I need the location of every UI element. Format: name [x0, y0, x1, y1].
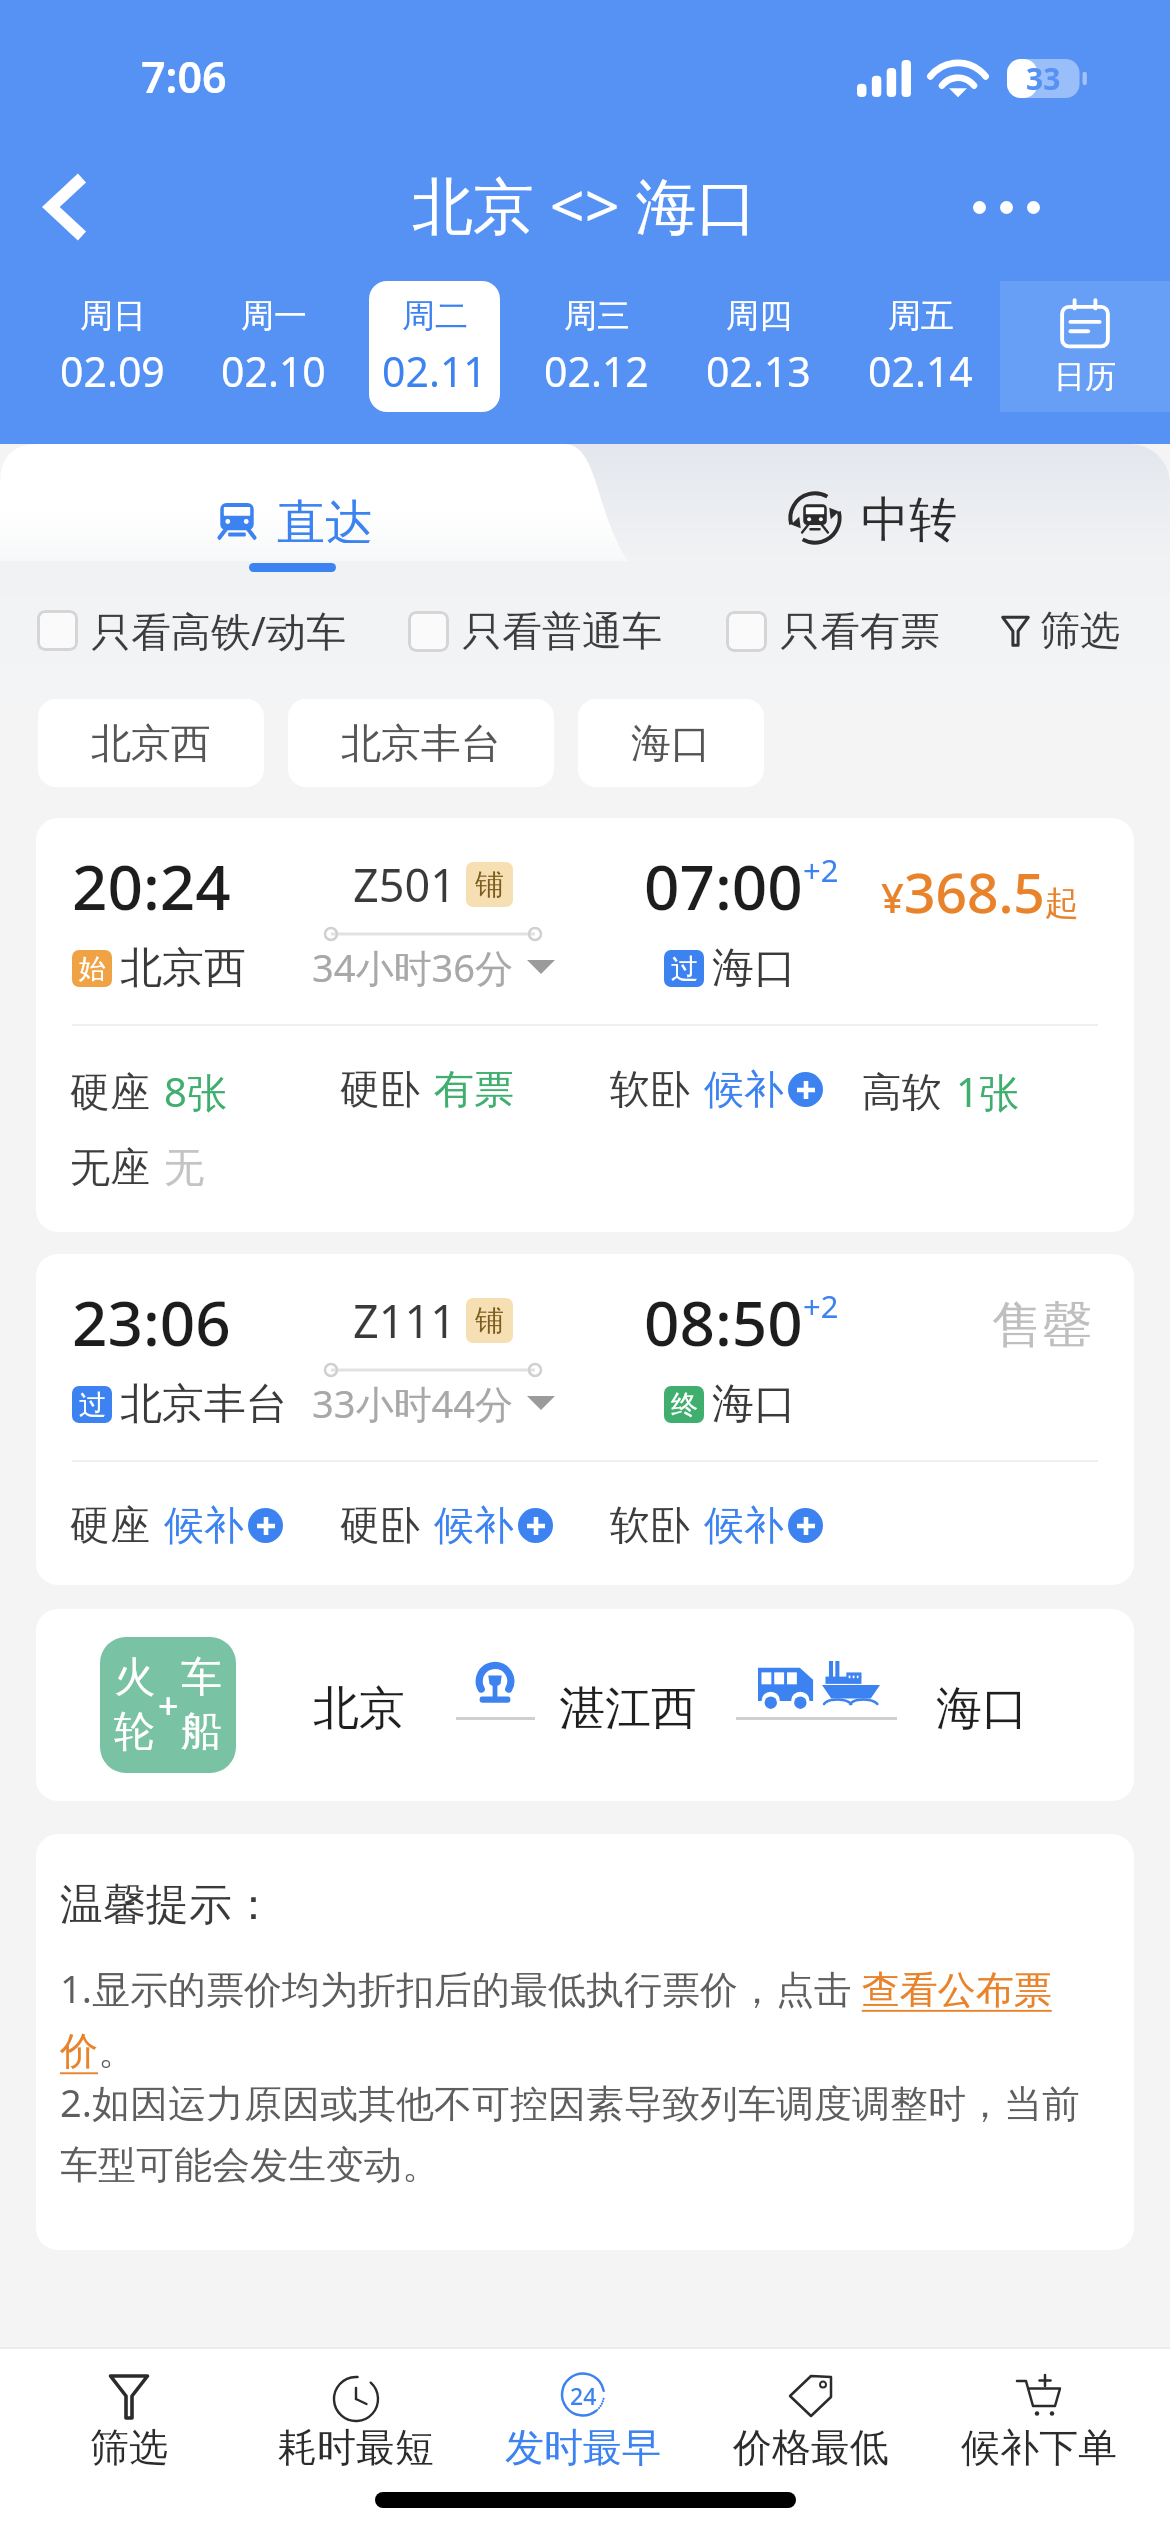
staticText: 周二 — [402, 295, 468, 337]
staticText: 只看高铁/动车 — [91, 603, 346, 658]
button[interactable]: 只看有票 — [726, 606, 940, 656]
staticText: 368.5 — [904, 854, 1045, 929]
staticText: 软卧 — [610, 1500, 690, 1550]
staticText: 02.12 — [544, 343, 649, 399]
staticText: 筛选 — [1040, 605, 1120, 655]
staticText: 8张 — [164, 1064, 227, 1119]
button[interactable]: 20:24 — [36, 818, 1134, 1232]
staticText: 铺 — [475, 1302, 504, 1339]
button[interactable]: 直达 — [215, 493, 373, 543]
staticText: 02.11 — [382, 343, 487, 399]
button[interactable]: 筛选 — [1001, 605, 1120, 655]
staticText: 候补 — [704, 1064, 784, 1114]
staticText: 海口 — [712, 1378, 796, 1431]
staticText: 直达 — [277, 493, 373, 543]
button[interactable]: 23:06 — [36, 1254, 1134, 1585]
staticText: 33 — [1026, 58, 1061, 99]
button[interactable]: 海口 — [578, 699, 764, 787]
button[interactable] — [0, 444, 628, 561]
staticText: 海口 — [631, 718, 711, 768]
button[interactable]: 日历 — [1000, 281, 1170, 412]
staticText: 34小时36分 — [312, 941, 513, 993]
staticText: 02.14 — [868, 343, 973, 399]
staticText: 耗时最短 — [278, 2423, 434, 2472]
staticText: 硬座 — [70, 1500, 150, 1550]
staticText: 周一 — [241, 295, 307, 337]
staticText: 有票 — [434, 1064, 514, 1114]
staticText: +2 — [803, 1285, 839, 1327]
staticText: 软卧 — [610, 1064, 690, 1114]
button[interactable]: 火 — [36, 1609, 1134, 1801]
staticText: 02.13 — [706, 343, 811, 399]
button[interactable]: 候补下单 — [925, 2349, 1153, 2476]
staticText: 周四 — [726, 295, 792, 337]
staticText: 过 — [671, 952, 698, 986]
staticText: 24 — [570, 2380, 597, 2411]
button[interactable]: 耗时最短 — [242, 2349, 469, 2476]
staticText: 23:06 — [72, 1280, 231, 1364]
staticText: 过 — [79, 1388, 106, 1422]
staticText: Z111 — [353, 1290, 456, 1351]
staticText: 无 — [164, 1142, 204, 1192]
staticText: ¥ — [881, 870, 904, 924]
staticText: 北京丰台 — [341, 718, 501, 768]
staticText: 北京西 — [120, 942, 246, 995]
staticText: 02.10 — [221, 343, 326, 399]
staticText: 海口 — [712, 942, 796, 995]
staticText: 33小时44分 — [312, 1377, 513, 1429]
button[interactable]: 北京西 — [38, 699, 264, 787]
staticText: 售罄 — [992, 1294, 1092, 1357]
staticText: 发时最早 — [505, 2423, 661, 2472]
staticText: 硬卧 — [340, 1064, 420, 1114]
staticText: 湛江西 — [559, 1680, 697, 1738]
staticText: 08:50 — [644, 1280, 803, 1364]
staticText: 始 — [79, 952, 106, 986]
button[interactable]: 周四 — [692, 281, 824, 412]
button[interactable]: Back — [18, 159, 114, 255]
staticText: 7:06 — [141, 47, 227, 106]
staticText: 车 — [181, 1652, 222, 1704]
staticText: Z501 — [353, 854, 456, 915]
staticText: 候补 — [434, 1500, 514, 1550]
button[interactable]: 北京丰台 — [288, 699, 554, 787]
staticText: 硬座 — [70, 1067, 150, 1117]
staticText: 海口 — [936, 1680, 1028, 1738]
button[interactable]: 周三 — [530, 281, 662, 412]
staticText: 中转 — [861, 490, 957, 546]
button[interactable]: 价格最低 — [697, 2349, 925, 2476]
staticText: 北京 — [313, 1680, 405, 1738]
staticText: 筛选 — [90, 2423, 168, 2472]
staticText: 1张 — [956, 1064, 1019, 1119]
staticText: 只看有票 — [780, 606, 940, 656]
button[interactable]: 周二 — [369, 281, 500, 412]
staticText: 日历 — [1054, 357, 1116, 396]
staticText: 20:24 — [72, 844, 231, 928]
staticText: 轮 — [114, 1706, 155, 1758]
staticText: + — [158, 1681, 179, 1730]
button[interactable]: 周五 — [854, 281, 986, 412]
button[interactable]: 24 — [469, 2349, 697, 2476]
button[interactable]: 筛选 — [15, 2349, 242, 2476]
button[interactable]: 周日 — [47, 281, 178, 412]
staticText: 候补 — [164, 1500, 244, 1550]
button[interactable]: 周一 — [208, 281, 339, 412]
staticText: 候补下单 — [961, 2423, 1117, 2472]
button[interactable]: 只看高铁/动车 — [37, 603, 346, 658]
staticText: 周五 — [888, 295, 954, 337]
button[interactable]: More options — [958, 159, 1054, 255]
staticText: 2.如因运力原因或其他不可控因素导致列车调度调整时，当前车型可能会发生变动。 — [60, 2076, 1080, 2190]
staticText: 02.09 — [60, 343, 165, 399]
staticText: 1.显示的票价均为折扣后的最低执行票价，点击 查看公布票价。 — [60, 1962, 1126, 2076]
staticText: 候补 — [704, 1500, 784, 1550]
staticText: 北京 <> 海口 — [412, 163, 758, 246]
button[interactable]: 中转 — [787, 490, 957, 546]
staticText: 火 — [114, 1652, 155, 1704]
button[interactable]: 只看普通车 — [408, 606, 662, 656]
staticText: 硬卧 — [340, 1500, 420, 1550]
staticText: 只看普通车 — [462, 606, 662, 656]
staticText: 价格最低 — [733, 2423, 889, 2472]
staticText: 船 — [181, 1706, 222, 1758]
staticText: 高软 — [862, 1067, 942, 1117]
staticText: 温馨提示： — [60, 1878, 275, 1932]
staticText: 北京丰台 — [120, 1378, 288, 1431]
